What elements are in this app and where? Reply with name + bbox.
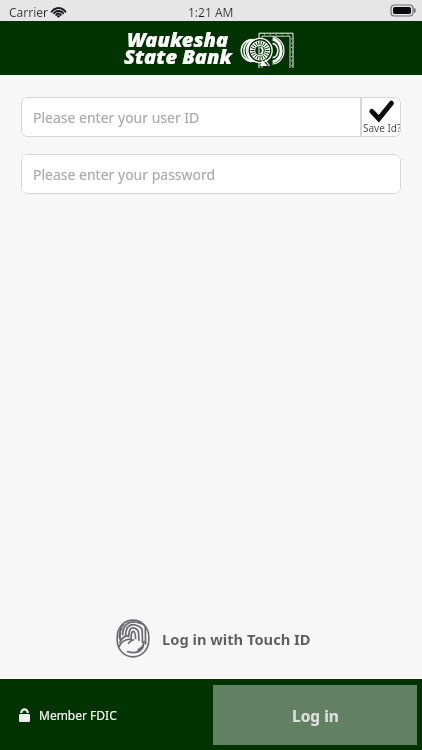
staticText: Log in: [292, 705, 339, 726]
button[interactable]: Save Id?: [361, 97, 401, 137]
staticText: Log in with Touch ID: [162, 629, 311, 649]
button[interactable]: Member FDIC: [19, 707, 117, 723]
button[interactable]: Please enter your password: [21, 154, 401, 194]
staticText: Please enter your password: [33, 165, 216, 184]
button[interactable]: Log in with Touch ID: [116, 619, 311, 658]
staticText: 1:21 AM: [188, 4, 234, 20]
staticText: Waukesha: [127, 26, 229, 53]
staticText: Member FDIC: [39, 707, 117, 723]
button[interactable]: Please enter your user ID: [21, 97, 361, 137]
staticText: Carrier: [9, 4, 49, 20]
staticText: Save Id?: [363, 121, 401, 135]
staticText: Please enter your user ID: [33, 108, 200, 127]
button[interactable]: Log in: [213, 685, 417, 745]
staticText: State Bank: [124, 43, 232, 70]
